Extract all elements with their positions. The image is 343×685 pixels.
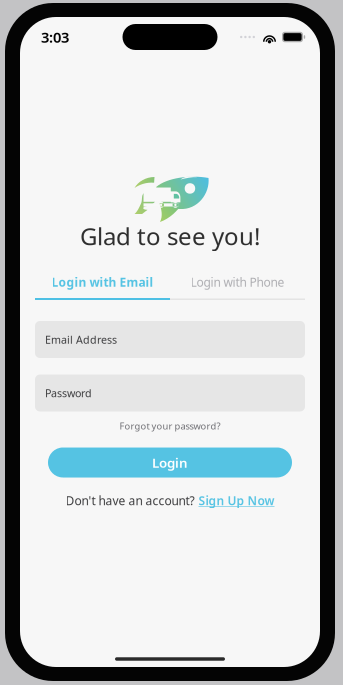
staticText: Login with Email [51, 274, 153, 290]
staticText: Email Address [45, 332, 117, 347]
staticText: Don't have an account? [65, 492, 194, 508]
staticText: Glad to see you! [80, 220, 260, 252]
staticText: Login with Phone [190, 274, 284, 290]
staticText: Login [152, 454, 188, 471]
staticText: Password [45, 386, 92, 400]
button[interactable]: Login [48, 447, 292, 477]
button[interactable]: Email Address [35, 321, 305, 358]
button[interactable]: Login with Email [35, 274, 170, 300]
button[interactable]: Sign Up Now [198, 492, 274, 508]
staticText: Sign Up Now [198, 492, 274, 508]
staticText: Forgot your password? [119, 420, 220, 432]
staticText: 3:03 [41, 27, 69, 47]
button[interactable]: Forgot your password? [113, 417, 226, 435]
button[interactable]: Password [35, 374, 305, 411]
button[interactable]: Login with Phone [170, 274, 305, 300]
